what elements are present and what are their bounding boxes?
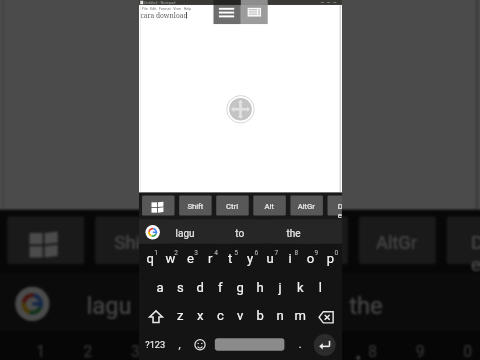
button[interactable]: Video player (139, 0, 342, 360)
